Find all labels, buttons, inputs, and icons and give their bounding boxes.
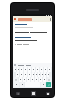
button[interactable]: Key [20, 72, 23, 77]
button[interactable]: Key [27, 77, 30, 82]
button[interactable]: Delete [47, 77, 51, 82]
button[interactable]: Key [32, 72, 34, 77]
button[interactable]: More options [49, 17, 51, 21]
button[interactable]: App icon [13, 16, 52, 22]
button[interactable]: Key [28, 67, 31, 72]
button[interactable]: Key [40, 67, 43, 72]
button[interactable]: Key [44, 72, 46, 77]
button[interactable]: Key [28, 72, 31, 77]
button[interactable]: Recent apps [44, 90, 51, 97]
button[interactable]: Key [20, 67, 23, 72]
button[interactable]: Key [14, 67, 16, 72]
button[interactable]: Home [29, 89, 37, 97]
button[interactable]: Symbols [14, 82, 19, 87]
button[interactable]: Period [41, 82, 45, 87]
button[interactable]: Key [38, 72, 40, 77]
button[interactable]: Key [23, 77, 26, 82]
button[interactable]: App icon [14, 18, 16, 20]
button[interactable]: Key [35, 72, 37, 77]
button[interactable]: Key [24, 67, 27, 72]
button[interactable]: Key [19, 77, 22, 82]
button[interactable]: Shift [14, 77, 18, 82]
button[interactable]: Back [14, 90, 21, 97]
button[interactable]: Key [35, 77, 38, 82]
button[interactable]: Key [16, 72, 19, 77]
button[interactable]: Key [17, 67, 19, 72]
button[interactable]: Key [24, 72, 27, 77]
button[interactable]: Key [41, 72, 43, 77]
button[interactable]: Key [32, 67, 35, 72]
button[interactable]: Key [43, 77, 46, 82]
button[interactable]: Key [36, 67, 39, 72]
button[interactable]: Key [39, 77, 42, 82]
button[interactable]: Enter [46, 82, 51, 87]
button[interactable]: Key [47, 72, 49, 77]
button[interactable]: Key [44, 67, 47, 72]
button[interactable]: Key [48, 67, 51, 72]
button[interactable]: Key [31, 77, 34, 82]
button[interactable]: Comma [20, 82, 24, 87]
